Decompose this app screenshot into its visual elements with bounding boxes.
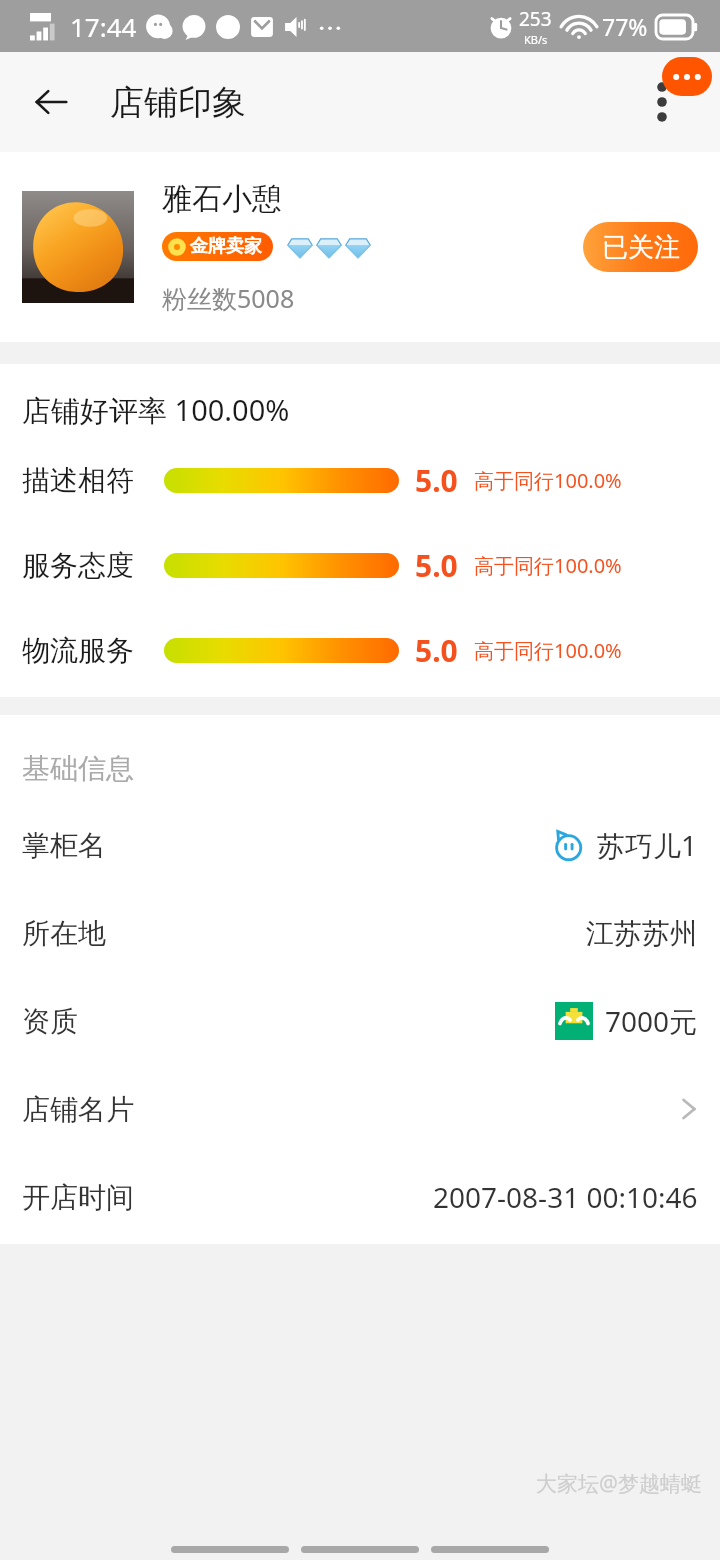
staticText: 店铺印象 bbox=[110, 81, 246, 124]
staticText: 开店时间 bbox=[22, 1180, 134, 1215]
staticText: 17:44 bbox=[70, 9, 137, 44]
staticText: 高于同行100.0% bbox=[474, 637, 622, 664]
button[interactable]: 已关注 bbox=[583, 222, 698, 272]
staticText: 资质 bbox=[22, 1004, 78, 1039]
staticText: 掌柜名 bbox=[22, 828, 106, 863]
staticText: 服务态度 bbox=[22, 548, 152, 583]
button[interactable]: Back bbox=[431, 1546, 549, 1553]
staticText: 雅石小憩 bbox=[162, 180, 282, 218]
staticText: 已关注 bbox=[602, 231, 680, 264]
staticText: 物流服务 bbox=[22, 633, 152, 668]
staticText: 5.0 bbox=[415, 460, 458, 501]
staticText: 高于同行100.0% bbox=[474, 552, 622, 579]
button[interactable]: 店铺名片 bbox=[0, 1088, 720, 1130]
staticText: 粉丝数5008 bbox=[162, 281, 295, 315]
staticText: 7000元 bbox=[605, 1002, 698, 1040]
staticText: KB/s bbox=[524, 32, 548, 47]
staticText: 77% bbox=[602, 11, 648, 42]
staticText: 5.0 bbox=[415, 545, 458, 586]
staticText: 所在地 bbox=[22, 916, 106, 951]
staticText: 苏巧儿1 bbox=[597, 826, 698, 864]
button[interactable]: Back bbox=[18, 69, 84, 135]
staticText: 5.0 bbox=[415, 630, 458, 671]
staticText: 253 bbox=[519, 6, 552, 32]
button[interactable]: Home bbox=[301, 1546, 419, 1553]
staticText: 店铺名片 bbox=[22, 1092, 134, 1127]
button[interactable]: Recents bbox=[171, 1546, 289, 1553]
staticText: 金牌卖家 bbox=[190, 235, 262, 258]
staticText: 高于同行100.0% bbox=[474, 467, 622, 494]
staticText: 店铺好评率 100.00% bbox=[22, 390, 290, 430]
staticText: 大家坛@梦越蜻蜓 bbox=[536, 1469, 702, 1498]
staticText: 江苏苏州 bbox=[586, 916, 698, 951]
button[interactable]: More options bbox=[634, 74, 690, 130]
staticText: 描述相符 bbox=[22, 463, 152, 498]
staticText: 2007-08-31 00:10:46 bbox=[433, 1178, 698, 1216]
staticText: 基础信息 bbox=[22, 751, 134, 786]
button[interactable]: Menu bbox=[662, 57, 712, 96]
